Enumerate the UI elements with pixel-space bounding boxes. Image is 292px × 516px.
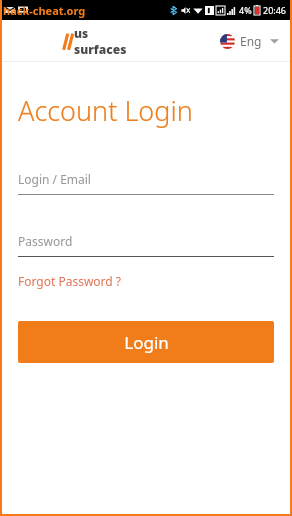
staticText: surfaces — [74, 41, 127, 57]
staticText: Login — [124, 331, 169, 354]
staticText: hack-cheat.org — [3, 3, 86, 18]
button[interactable]: Forgot Password ? — [18, 271, 122, 291]
staticText: Account Login — [18, 92, 193, 129]
button[interactable]: Login — [18, 321, 274, 363]
staticText: us — [74, 25, 89, 41]
staticText: Login / Email — [18, 171, 91, 187]
staticText: 4% — [239, 4, 252, 16]
button[interactable]: Password — [18, 233, 274, 257]
staticText: Forgot Password ? — [18, 273, 122, 289]
staticText: Password — [18, 233, 73, 249]
staticText: Eng — [240, 33, 262, 49]
button[interactable]: Language: English — [214, 29, 290, 53]
other: Language: English — [220, 34, 235, 49]
button[interactable]: Login / Email — [18, 171, 274, 195]
staticText: 20:46 — [263, 4, 287, 16]
